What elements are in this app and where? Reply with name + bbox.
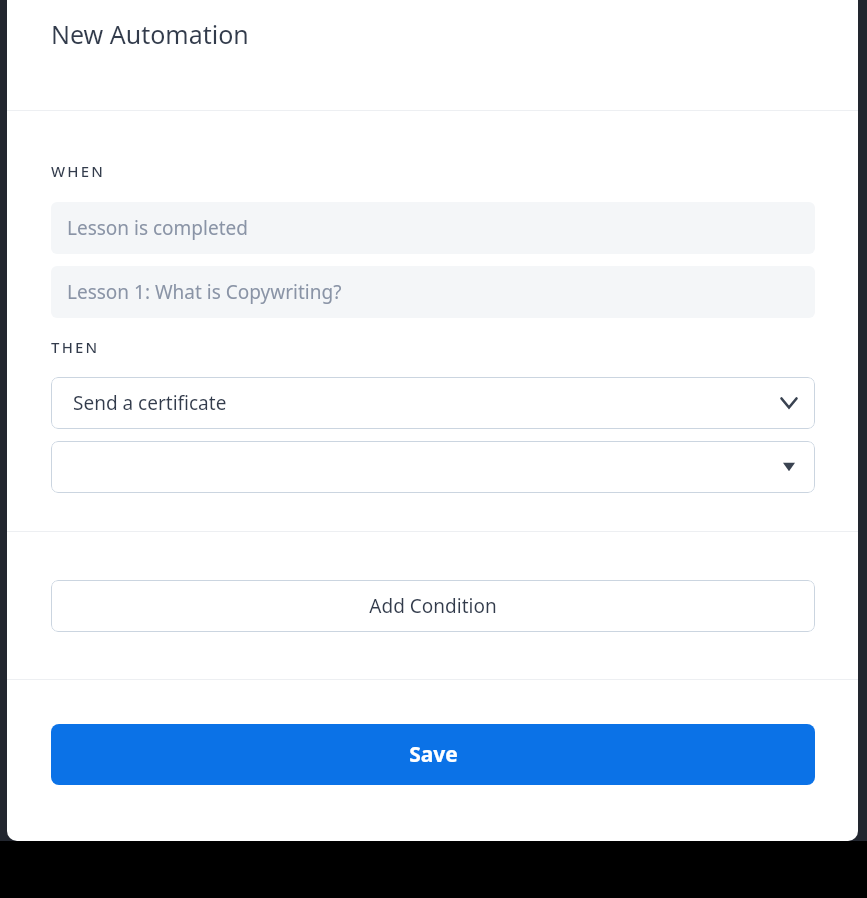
staticText: Send a certificate — [73, 390, 227, 416]
staticText: Lesson 1: What is Copywriting? — [67, 279, 342, 305]
button[interactable]: Send a certificate — [51, 377, 815, 429]
button[interactable]: Select an option — [51, 441, 815, 493]
button[interactable]: Save — [51, 724, 815, 785]
button[interactable]: Add Condition — [51, 580, 815, 632]
button[interactable]: Lesson is completed — [51, 202, 815, 254]
staticText: Save — [409, 740, 458, 769]
staticText: New Automation — [51, 17, 249, 51]
button[interactable]: Lesson 1: What is Copywriting? — [51, 266, 815, 318]
staticText: Lesson is completed — [67, 215, 248, 241]
staticText: WHEN — [51, 161, 106, 181]
staticText: Add Condition — [369, 593, 497, 619]
staticText: THEN — [51, 337, 100, 357]
